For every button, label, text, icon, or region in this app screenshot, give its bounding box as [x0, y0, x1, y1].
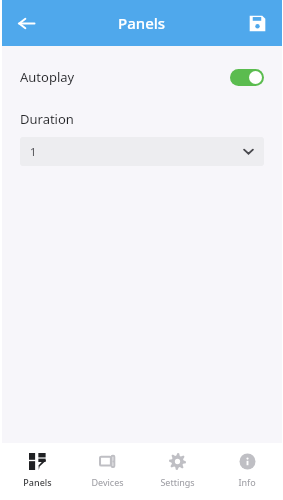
staticText: Autoplay [20, 68, 75, 86]
staticText: Info [238, 476, 256, 488]
staticText: Devices [91, 476, 124, 488]
staticText: 1 [30, 144, 37, 159]
button[interactable]: Save [240, 6, 274, 40]
button[interactable]: 1 [20, 137, 264, 166]
staticText: Duration [20, 110, 74, 128]
button[interactable]: Devices [72, 443, 142, 498]
staticText: Settings [160, 476, 195, 488]
staticText: Panels [23, 476, 52, 488]
staticText: Panels [118, 13, 166, 33]
button[interactable]: Settings [142, 443, 212, 498]
button[interactable]: Autoplay [2, 62, 282, 92]
button[interactable]: Info [212, 443, 282, 498]
button[interactable]: Panels [2, 443, 72, 498]
button[interactable]: Back [8, 5, 44, 41]
